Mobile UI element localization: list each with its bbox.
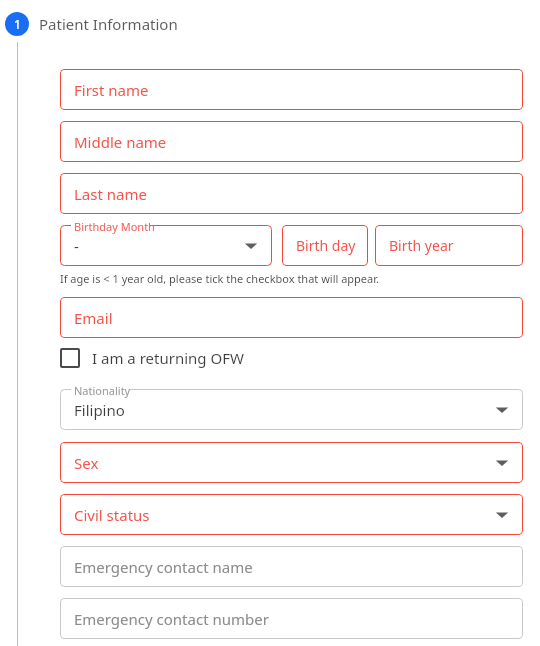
staticText: Emergency contact name <box>74 557 253 577</box>
button[interactable]: Nationality <box>60 389 523 430</box>
staticText: Emergency contact number <box>74 609 269 629</box>
button[interactable]: Last name <box>60 173 523 214</box>
staticText: I am a returning OFW <box>92 348 244 368</box>
staticText: Birthday Month <box>74 219 155 234</box>
staticText: Email <box>74 308 113 328</box>
staticText: Sex <box>74 453 99 473</box>
button[interactable]: First name <box>60 69 523 110</box>
staticText: Birth day <box>296 236 356 255</box>
staticText: Patient Information <box>39 14 178 34</box>
button[interactable]: Middle name <box>60 121 523 162</box>
staticText: Nationality <box>74 383 131 398</box>
staticText: Filipino <box>74 400 125 420</box>
staticText: If age is < 1 year old, please tick the … <box>60 271 379 286</box>
other: I am a returning OFW checkbox <box>60 348 80 368</box>
staticText: Last name <box>74 184 147 204</box>
staticText: Civil status <box>74 505 150 525</box>
button[interactable]: 1 <box>5 12 178 36</box>
button[interactable]: Birth day <box>282 225 368 266</box>
button[interactable]: Civil status <box>60 494 523 535</box>
button[interactable]: Emergency contact number <box>60 598 523 639</box>
button[interactable]: Birthday Month <box>60 225 272 266</box>
staticText: Birth year <box>389 236 454 255</box>
button[interactable]: I am a returning OFW checkbox <box>60 348 244 368</box>
staticText: Middle name <box>74 132 167 152</box>
staticText: 1 <box>14 16 21 32</box>
staticText: - <box>74 236 79 256</box>
button[interactable]: Birth year <box>375 225 523 266</box>
staticText: First name <box>74 80 149 100</box>
button[interactable]: Sex <box>60 442 523 483</box>
button[interactable]: Emergency contact name <box>60 546 523 587</box>
button[interactable]: Email <box>60 297 523 338</box>
